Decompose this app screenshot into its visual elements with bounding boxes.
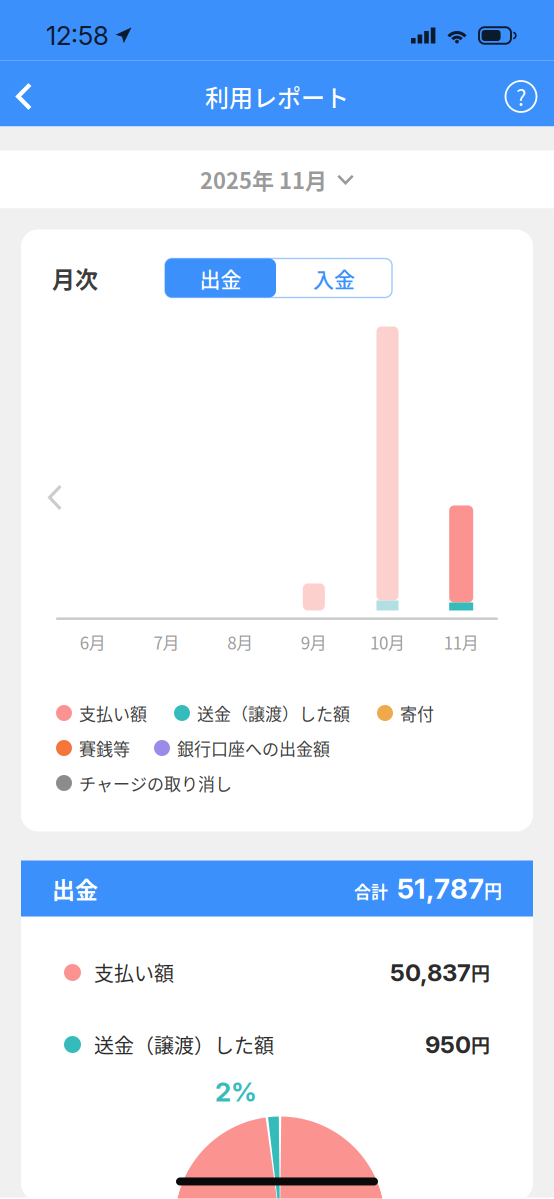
staticText: 支払い額 — [79, 701, 147, 725]
staticText: 6月 — [80, 630, 106, 654]
staticText: 11月 — [444, 630, 479, 654]
staticText: 送金（譲渡）した額 — [94, 1030, 274, 1059]
staticText: 950 — [425, 1030, 471, 1059]
staticText: 合計 — [354, 879, 388, 903]
staticText: 2025年 11月 — [200, 164, 327, 195]
staticText: 2% — [215, 1076, 257, 1108]
staticText: ? — [516, 81, 526, 112]
staticText: チャージの取り消し — [79, 771, 232, 795]
staticText: 50,837 — [390, 958, 471, 987]
staticText: 円 — [471, 1030, 490, 1058]
button[interactable]: 戻る — [1, 72, 47, 120]
button[interactable]: 2025年 11月 — [0, 150, 554, 208]
button[interactable]: 出金 — [165, 258, 276, 297]
staticText: 出金 — [52, 872, 98, 905]
staticText: 7月 — [153, 630, 179, 654]
staticText: 銀行口座への出金額 — [177, 736, 330, 760]
staticText: 送金（譲渡）した額 — [197, 701, 350, 725]
staticText: 月次 — [52, 261, 98, 295]
staticText: 12:58 — [46, 20, 109, 51]
staticText: 寄付 — [400, 701, 434, 725]
staticText: 入金 — [313, 263, 355, 293]
staticText: 出金 — [199, 263, 241, 293]
button[interactable]: ヘルプ — [498, 72, 544, 120]
staticText: 51,787 — [397, 872, 484, 905]
button[interactable]: 入金 — [276, 258, 392, 297]
staticText: 9月 — [301, 630, 327, 654]
button[interactable]: 前の期間 — [35, 475, 75, 519]
staticText: 支払い額 — [94, 958, 174, 987]
staticText: 10月 — [370, 630, 405, 654]
staticText: 利用レポート — [205, 79, 349, 114]
staticText: 円 — [484, 877, 502, 903]
staticText: 8月 — [227, 630, 253, 654]
staticText: 賽銭等 — [79, 736, 130, 760]
staticText: 円 — [471, 958, 490, 986]
